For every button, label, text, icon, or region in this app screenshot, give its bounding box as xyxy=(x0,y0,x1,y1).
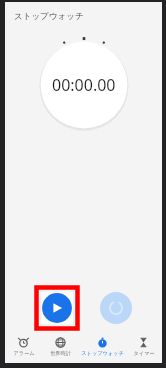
button[interactable]: リセット xyxy=(100,292,132,324)
button[interactable]: アラーム xyxy=(5,336,42,358)
staticText: ストップウォッチ xyxy=(81,350,124,357)
button[interactable]: タイマー xyxy=(125,336,162,358)
staticText: 世界時計 xyxy=(50,350,71,357)
button[interactable]: ストップウォッチ xyxy=(79,336,125,358)
staticText: ストップウォッチ xyxy=(14,11,84,22)
button[interactable]: 開始 xyxy=(36,287,78,329)
staticText: 00:00.00 xyxy=(52,74,116,96)
staticText: アラーム xyxy=(13,350,35,357)
button[interactable]: 世界時計 xyxy=(42,336,79,358)
staticText: タイマー xyxy=(133,350,155,357)
